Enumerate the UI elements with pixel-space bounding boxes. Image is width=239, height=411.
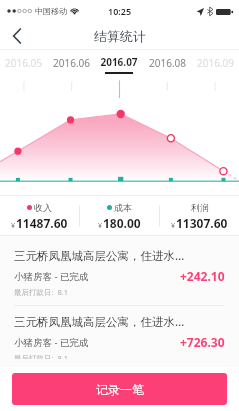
- staticText: ¥: [171, 221, 176, 231]
- staticText: 10:25: [108, 5, 132, 17]
- staticText: 结算统计: [94, 28, 146, 44]
- staticText: 三元桥凤凰城高层公寓，住进水…: [14, 314, 185, 330]
- staticText: 2016.05: [5, 56, 42, 70]
- staticText: 小猪房客 - 已完成: [14, 270, 89, 283]
- staticText: 11487.60: [16, 215, 68, 231]
- staticText: 2016.08: [149, 56, 186, 70]
- staticText: ¥: [98, 221, 103, 231]
- button[interactable]: 2016.06: [47, 50, 95, 78]
- button[interactable]: 2016.07: [95, 50, 143, 78]
- button[interactable]: 2016.08: [143, 50, 191, 78]
- staticText: 三元桥凤凰城高层公寓，住进水…: [14, 248, 185, 264]
- staticText: 小猪房客 - 已完成: [14, 336, 89, 349]
- button[interactable]: 2016.09: [191, 50, 239, 78]
- staticText: +242.10: [180, 268, 225, 284]
- button[interactable]: 收入: [0, 196, 79, 236]
- staticText: 最后打款日: 8.1: [14, 287, 68, 297]
- staticText: 2016.09: [197, 56, 234, 70]
- staticText: 成本: [114, 202, 132, 213]
- button[interactable]: 成本: [80, 196, 159, 236]
- button[interactable]: 利润: [160, 196, 239, 236]
- staticText: 11307.60: [176, 215, 228, 231]
- button[interactable]: 三元桥凤凰城高层公寓，住进水…: [0, 306, 239, 367]
- staticText: 收入: [34, 202, 52, 213]
- button[interactable]: 三元桥凤凰城高层公寓，住进水…: [0, 240, 239, 305]
- button[interactable]: 2016.05: [0, 50, 47, 78]
- staticText: 2016.06: [53, 56, 90, 70]
- button[interactable]: 记录一笔: [12, 373, 227, 405]
- button[interactable]: Back: [0, 22, 34, 50]
- staticText: 记录一笔: [96, 382, 144, 397]
- staticText: 利润: [191, 202, 209, 213]
- staticText: ¥: [11, 221, 16, 231]
- staticText: 180.00: [103, 215, 141, 231]
- staticText: 最后打款日: 8.1: [14, 353, 68, 359]
- staticText: 中国移动: [35, 6, 67, 16]
- staticText: +726.30: [180, 334, 225, 350]
- staticText: 2016.07: [100, 55, 138, 69]
